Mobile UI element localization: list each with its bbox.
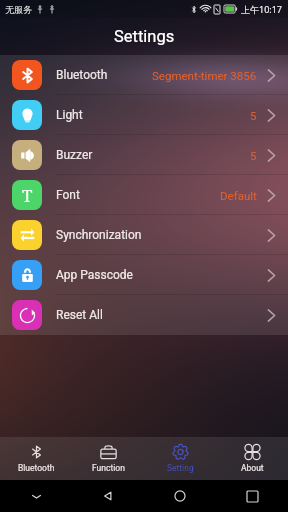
button[interactable]: Setting <box>144 437 216 480</box>
staticText: Setting <box>167 463 194 473</box>
button[interactable]: About <box>216 437 288 480</box>
staticText: App Passcode <box>56 268 133 282</box>
button[interactable]: Function <box>72 437 144 480</box>
staticText: 5 <box>250 149 257 162</box>
button[interactable]: Reset All <box>0 295 288 335</box>
staticText: Synchronization <box>56 228 142 242</box>
staticText: Light <box>56 108 83 122</box>
button[interactable]: Home <box>144 480 216 512</box>
staticText: T <box>22 184 33 207</box>
button[interactable]: Synchronization <box>0 215 288 255</box>
staticText: 无服务 <box>5 4 32 15</box>
staticText: About <box>241 463 264 473</box>
button[interactable]: Light <box>0 95 288 135</box>
button[interactable]: Hide keyboard <box>0 480 72 512</box>
button[interactable]: Bluetooth <box>0 437 72 480</box>
staticText: Default <box>220 189 257 202</box>
button[interactable]: Bluetooth <box>0 55 288 95</box>
staticText: Settings <box>114 27 175 46</box>
staticText: Reset All <box>56 308 103 322</box>
staticText: Bluetooth <box>18 463 55 473</box>
staticText: Bluetooth <box>56 68 108 82</box>
staticText: 5 <box>250 109 257 122</box>
staticText: Font <box>56 188 80 202</box>
button[interactable]: Buzzer <box>0 135 288 175</box>
staticText: Function <box>92 463 125 473</box>
staticText: Buzzer <box>56 148 93 162</box>
staticText: Segment-timer 3856 <box>152 69 257 82</box>
button[interactable]: App Passcode <box>0 255 288 295</box>
button[interactable]: Back <box>72 480 144 512</box>
button[interactable]: T <box>0 175 288 215</box>
button[interactable]: Recent apps <box>216 480 288 512</box>
staticText: 上午10:17 <box>241 3 283 15</box>
